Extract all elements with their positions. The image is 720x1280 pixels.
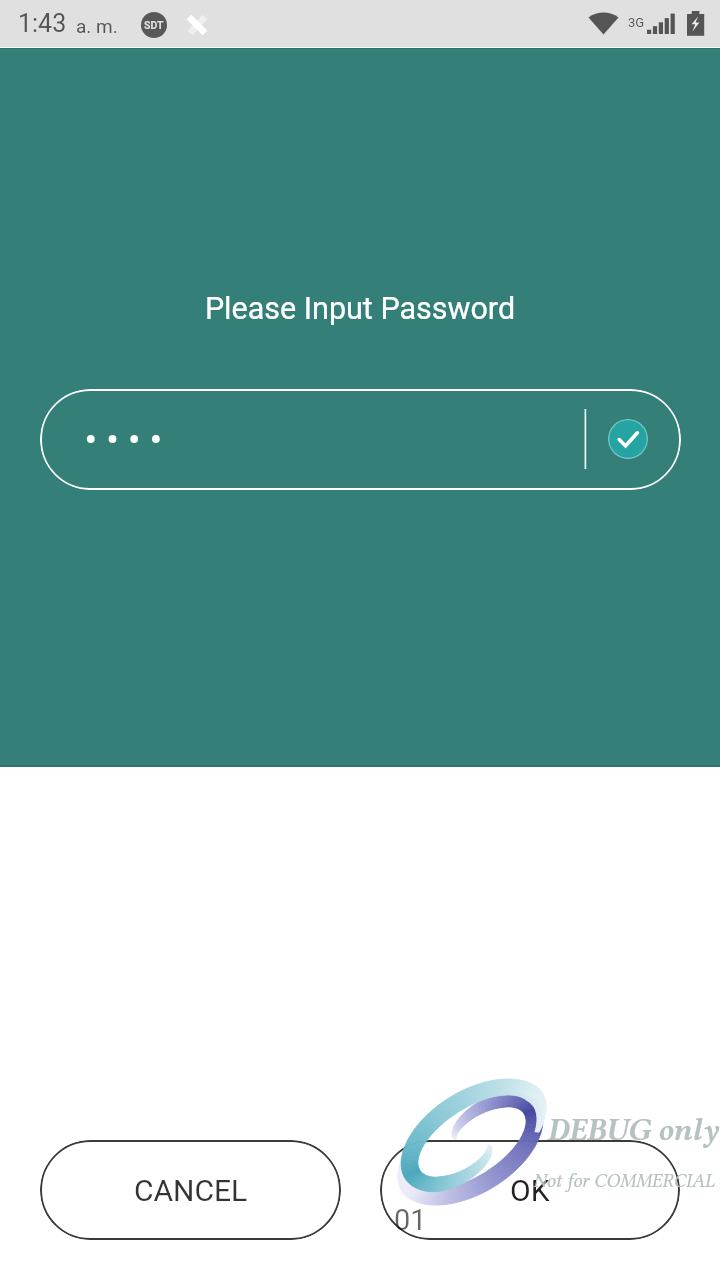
staticText: 3G [628,15,645,30]
staticText: Not for COMMERCIAL [533,1169,715,1192]
staticText: SDT [144,19,164,31]
button[interactable]: Confirm password [40,389,681,490]
staticText: 1:43 [18,9,67,38]
staticText: CANCEL [134,1173,248,1208]
staticText: DEBUG only [547,1112,718,1147]
staticText: Please Input Password [0,291,720,327]
staticText: 01 [394,1203,427,1237]
staticText: OK [510,1173,550,1208]
button[interactable]: CANCEL [40,1140,341,1240]
staticText: a. m. [76,15,118,37]
other: Notification [186,14,210,38]
button[interactable]: OK [380,1140,680,1240]
button[interactable]: Confirm password [608,419,648,459]
